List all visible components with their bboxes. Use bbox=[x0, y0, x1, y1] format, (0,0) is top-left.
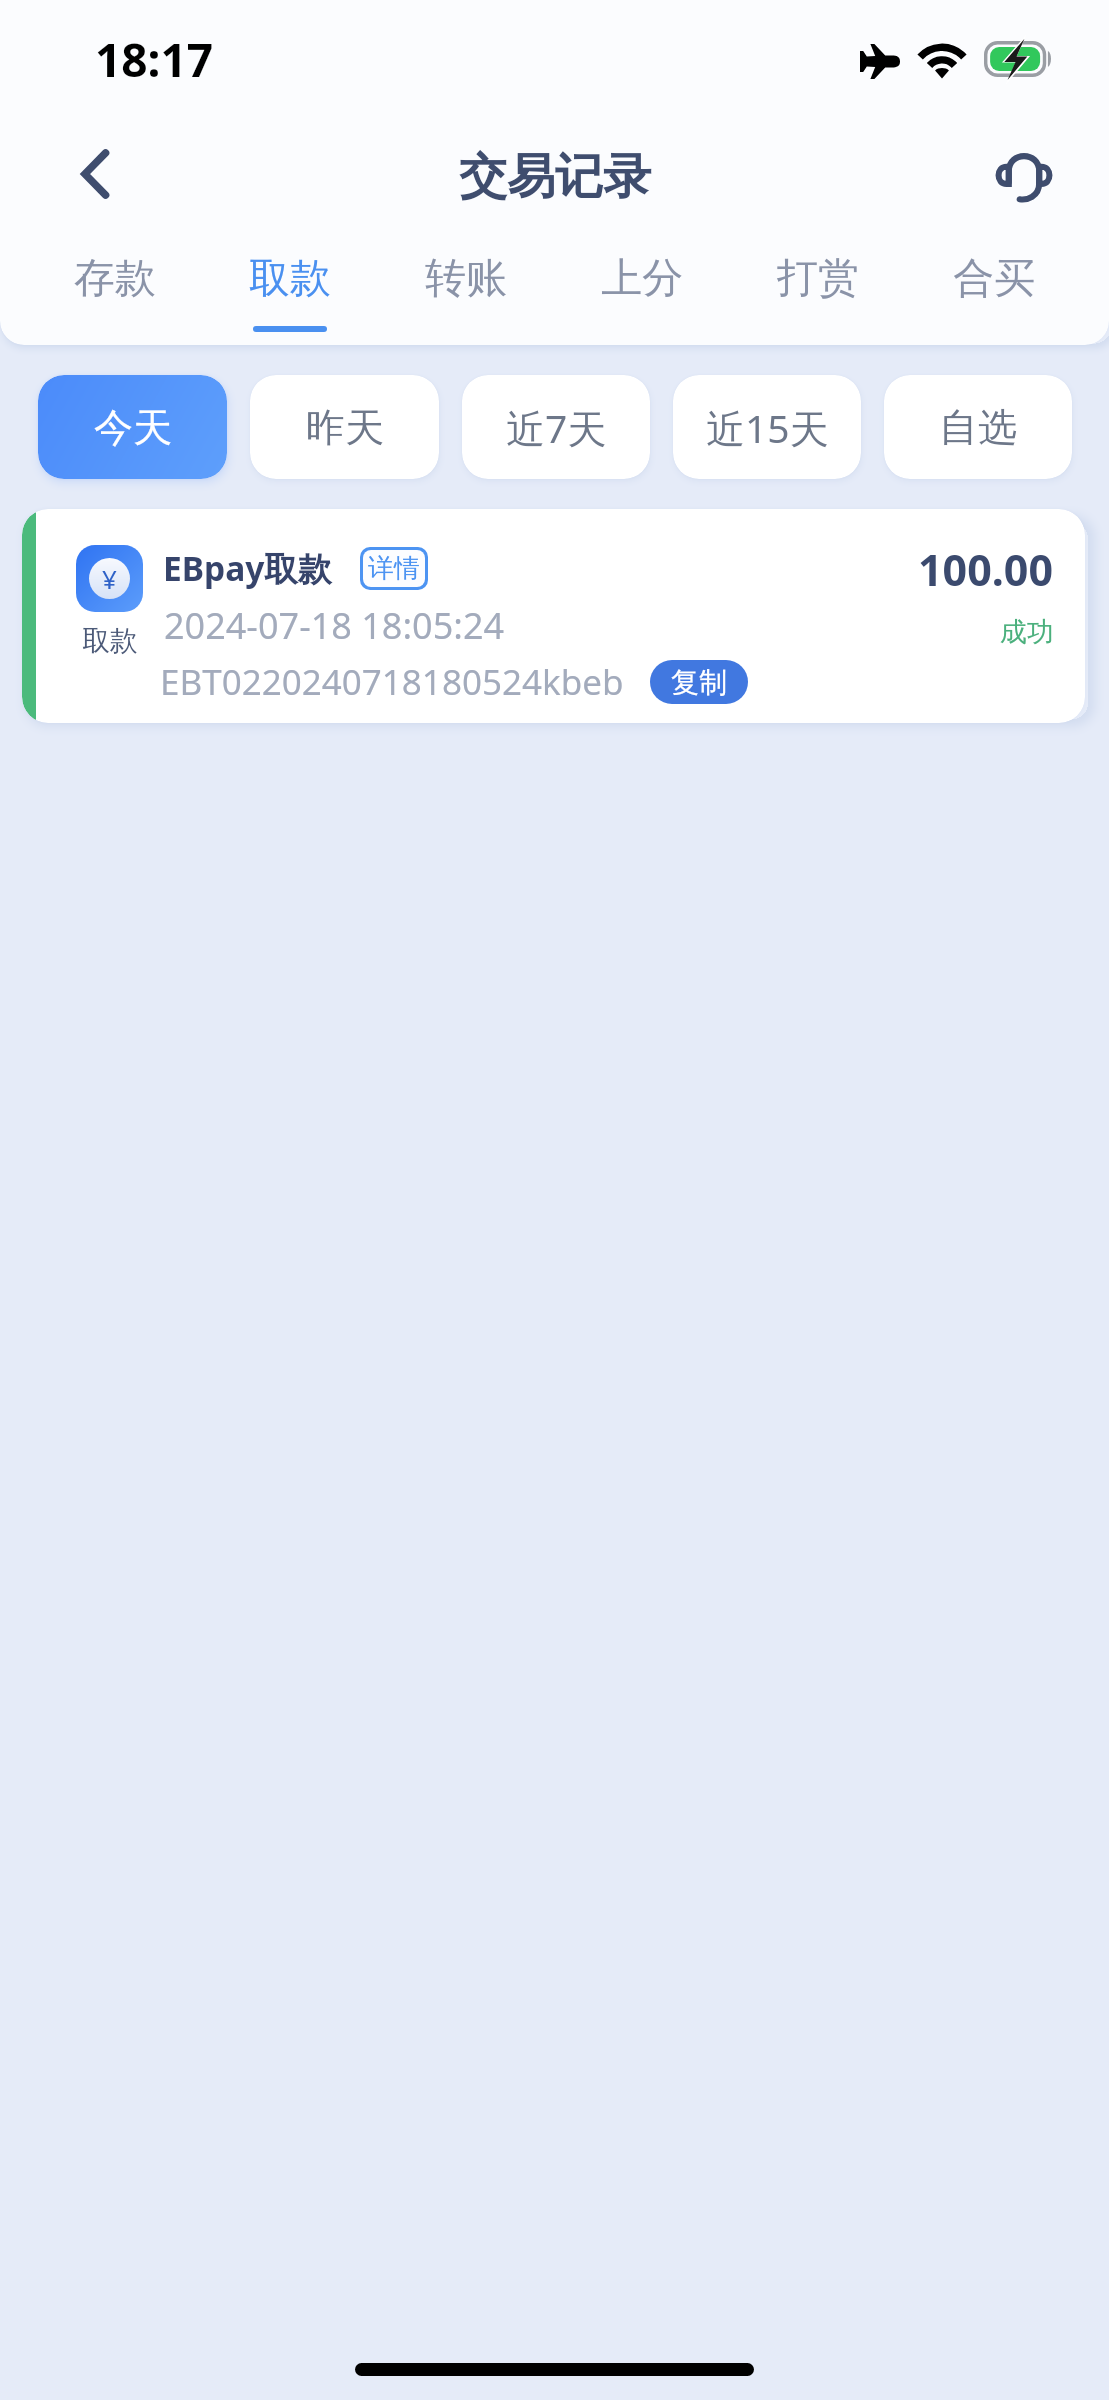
button[interactable]: 自选 bbox=[884, 375, 1072, 479]
staticText: EBpay取款 bbox=[163, 545, 332, 591]
staticText: 上分 bbox=[601, 253, 683, 305]
staticText: 昨天 bbox=[306, 403, 384, 452]
staticText: 自选 bbox=[939, 403, 1017, 452]
staticText: 复制 bbox=[671, 665, 727, 700]
button[interactable]: 昨天 bbox=[250, 375, 439, 479]
staticText: 取款 bbox=[82, 623, 138, 658]
button[interactable]: 上分 bbox=[554, 233, 730, 345]
staticText: 存款 bbox=[74, 253, 156, 305]
button[interactable]: 合买 bbox=[906, 233, 1082, 345]
button[interactable]: Customer service bbox=[986, 138, 1062, 214]
button[interactable]: Back bbox=[61, 139, 131, 209]
button[interactable]: 打赏 bbox=[730, 233, 906, 345]
staticText: ¥ bbox=[102, 561, 117, 596]
staticText: 100.00 bbox=[918, 540, 1054, 599]
staticText: EBT0220240718180524kbeb bbox=[160, 658, 624, 706]
button[interactable] bbox=[22, 509, 1085, 723]
staticText: 转账 bbox=[425, 253, 507, 305]
staticText: 18:17 bbox=[95, 28, 214, 91]
button[interactable]: 今天 bbox=[38, 375, 227, 479]
button[interactable]: 复制 bbox=[671, 660, 727, 704]
button[interactable]: 存款 bbox=[27, 233, 202, 345]
button[interactable]: 转账 bbox=[378, 233, 554, 345]
staticText: 打赏 bbox=[777, 253, 859, 305]
staticText: 2024-07-18 18:05:24 bbox=[164, 601, 505, 650]
staticText: 交易记录 bbox=[459, 147, 651, 207]
staticText: 合买 bbox=[953, 253, 1035, 305]
staticText: 今天 bbox=[94, 403, 172, 452]
staticText: 取款 bbox=[249, 253, 331, 305]
button[interactable]: 近15天 bbox=[673, 375, 861, 479]
button[interactable]: 取款 bbox=[202, 233, 378, 345]
button[interactable]: 近7天 bbox=[462, 375, 650, 479]
button[interactable]: 详情 bbox=[368, 550, 420, 587]
staticText: 详情 bbox=[368, 552, 420, 585]
staticText: 成功 bbox=[1000, 615, 1054, 649]
staticText: 近7天 bbox=[506, 401, 607, 454]
staticText: 近15天 bbox=[706, 401, 829, 454]
